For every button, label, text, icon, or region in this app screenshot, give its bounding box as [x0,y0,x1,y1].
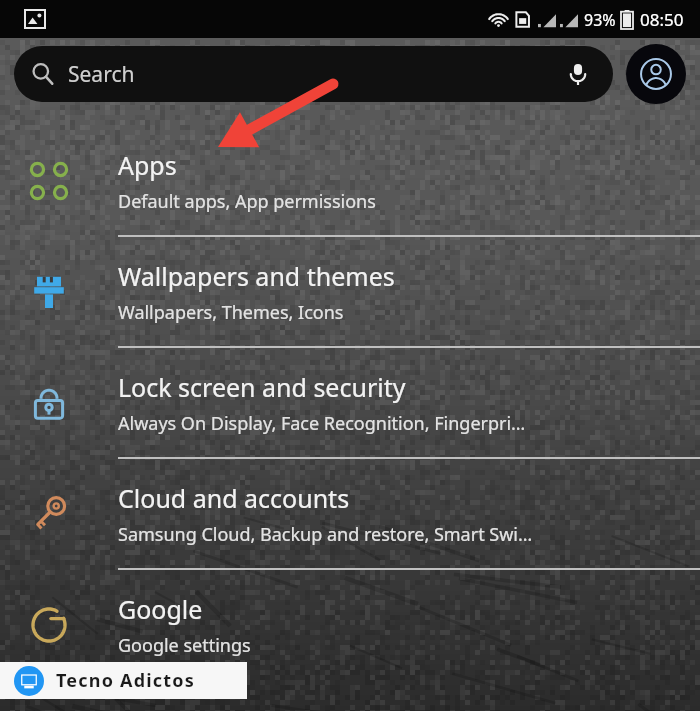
staticText: Google [118,592,203,626]
button[interactable]: Lock screen and security [0,348,700,457]
staticText: Google settings [118,633,251,658]
button[interactable]: Cloud and accounts [0,459,700,568]
staticText: Apps [118,148,177,182]
button[interactable]: Account [626,44,686,104]
button[interactable]: Search [14,46,613,102]
staticText: Samsung Cloud, Backup and restore, Smart… [118,522,533,547]
button[interactable]: Voice search [561,57,595,91]
button[interactable]: Wallpapers and themes [0,237,700,346]
staticText: Search [68,60,135,89]
staticText: Wallpapers, Themes, Icons [118,300,344,325]
staticText: Default apps, App permissions [118,189,376,214]
staticText: Cloud and accounts [118,481,350,515]
staticText: Lock screen and security [118,370,406,404]
staticText: 93% [584,9,616,31]
staticText: Always On Display, Face Recognition, Fin… [118,411,526,436]
staticText: Tecno Adictos [56,668,195,693]
staticText: Wallpapers and themes [118,259,395,293]
button[interactable]: Google [0,570,700,679]
button[interactable]: Apps [0,126,700,235]
staticText: 08:50 [640,8,684,31]
